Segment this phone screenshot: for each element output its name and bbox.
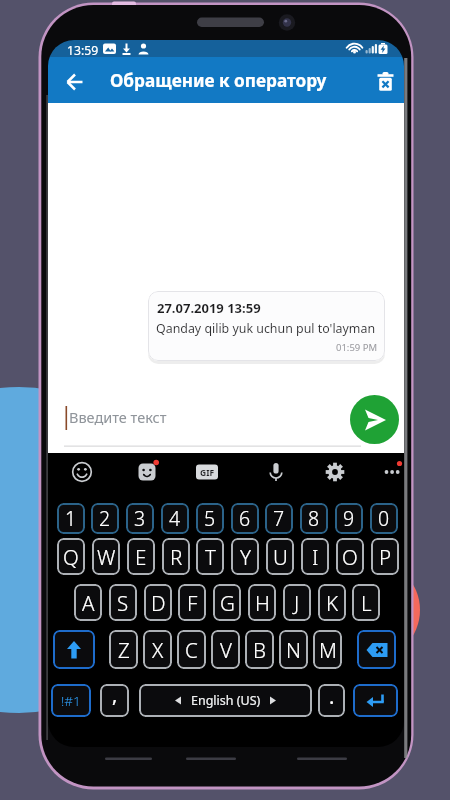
button[interactable]: B xyxy=(245,630,274,669)
button[interactable]: I xyxy=(301,538,329,575)
button[interactable]: H xyxy=(248,584,276,621)
staticText: !#1 xyxy=(61,692,81,710)
button[interactable]: C xyxy=(177,630,206,669)
button[interactable] xyxy=(64,390,364,450)
button[interactable]: English (US) xyxy=(139,684,312,717)
staticText: 8 xyxy=(308,505,320,532)
button[interactable]: G xyxy=(213,584,241,621)
button[interactable]: 0 xyxy=(370,503,398,534)
button[interactable]: W xyxy=(92,538,120,575)
staticText: H xyxy=(255,589,270,617)
staticText: 3 xyxy=(134,505,146,532)
staticText: R xyxy=(170,543,183,571)
staticText: E xyxy=(135,543,147,571)
staticText: C xyxy=(185,636,198,664)
staticText: 13:59 xyxy=(67,42,99,59)
staticText: L xyxy=(361,589,372,617)
staticText: I xyxy=(312,543,319,571)
staticText: 6 xyxy=(239,505,251,532)
staticText: 2 xyxy=(99,505,111,532)
button[interactable]: 1 xyxy=(57,503,85,534)
button[interactable]: R xyxy=(162,538,190,575)
staticText: D xyxy=(151,589,166,617)
staticText: N xyxy=(286,636,301,664)
button[interactable] xyxy=(60,68,90,96)
button[interactable]: D xyxy=(144,584,172,621)
staticText: V xyxy=(220,636,232,664)
staticText: F xyxy=(187,589,198,617)
button[interactable]: Y xyxy=(231,538,259,575)
button[interactable]: 9 xyxy=(335,503,363,534)
staticText: , xyxy=(112,684,118,708)
button[interactable]: U xyxy=(266,538,294,575)
button[interactable] xyxy=(368,66,402,96)
button[interactable]: F xyxy=(178,584,206,621)
staticText: 1 xyxy=(65,505,77,532)
staticText: 4 xyxy=(169,505,181,532)
button[interactable] xyxy=(133,458,161,486)
button[interactable]: 7 xyxy=(265,503,293,534)
button[interactable]: K xyxy=(318,584,346,621)
button[interactable]: J xyxy=(283,584,311,621)
button[interactable]: 27.07.2019 13:59 xyxy=(148,291,385,361)
button[interactable] xyxy=(357,630,396,669)
button[interactable] xyxy=(378,458,404,486)
button[interactable]: 4 xyxy=(161,503,189,534)
staticText: J xyxy=(294,589,300,617)
staticText: Qanday qilib yuk uchun pul to'layman xyxy=(156,320,376,337)
staticText: P xyxy=(379,543,392,571)
button[interactable]: Q xyxy=(57,538,85,575)
button[interactable]: Z xyxy=(109,630,138,669)
staticText: B xyxy=(253,636,266,664)
staticText: 9 xyxy=(343,505,355,532)
button[interactable] xyxy=(262,458,290,486)
staticText: 01:59 PM xyxy=(336,341,378,354)
staticText: English (US) xyxy=(191,692,261,709)
staticText: X xyxy=(152,636,164,664)
staticText: . xyxy=(329,684,335,710)
staticText: Z xyxy=(118,636,130,664)
button[interactable]: E xyxy=(127,538,155,575)
button[interactable]: S xyxy=(109,584,137,621)
button[interactable] xyxy=(350,395,399,444)
staticText: Y xyxy=(240,543,251,571)
button[interactable]: 2 xyxy=(91,503,119,534)
button[interactable]: T xyxy=(196,538,224,575)
staticText: S xyxy=(117,589,129,617)
button[interactable]: , xyxy=(100,684,129,717)
button[interactable]: V xyxy=(211,630,240,669)
button[interactable]: A xyxy=(74,584,102,621)
staticText: O xyxy=(342,543,358,571)
staticText: A xyxy=(82,589,95,617)
staticText: Введите текст xyxy=(69,407,167,427)
staticText: K xyxy=(326,589,339,617)
staticText: T xyxy=(205,543,216,571)
button[interactable] xyxy=(321,458,349,486)
button[interactable]: !#1 xyxy=(51,684,91,717)
button[interactable] xyxy=(68,458,96,486)
staticText: 0 xyxy=(378,505,390,532)
button[interactable] xyxy=(53,630,95,669)
button[interactable]: L xyxy=(352,584,380,621)
button[interactable]: M xyxy=(313,630,342,669)
staticText: Обращение к оператору xyxy=(110,69,327,92)
staticText: 27.07.2019 13:59 xyxy=(157,299,261,317)
staticText: M xyxy=(319,636,337,664)
button[interactable]: O xyxy=(336,538,364,575)
button[interactable] xyxy=(193,458,221,486)
button[interactable]: 6 xyxy=(231,503,259,534)
button[interactable]: P xyxy=(371,538,399,575)
staticText: Q xyxy=(63,543,79,571)
button[interactable]: X xyxy=(143,630,172,669)
button[interactable]: 8 xyxy=(300,503,328,534)
staticText: W xyxy=(97,543,116,571)
button[interactable]: 5 xyxy=(196,503,224,534)
button[interactable] xyxy=(353,684,398,717)
button[interactable]: N xyxy=(279,630,308,669)
staticText: GIF xyxy=(200,467,215,479)
staticText: 7 xyxy=(273,505,285,532)
staticText: 5 xyxy=(204,505,216,532)
staticText: U xyxy=(273,543,288,571)
button[interactable]: . xyxy=(318,684,345,717)
button[interactable]: 3 xyxy=(126,503,154,534)
